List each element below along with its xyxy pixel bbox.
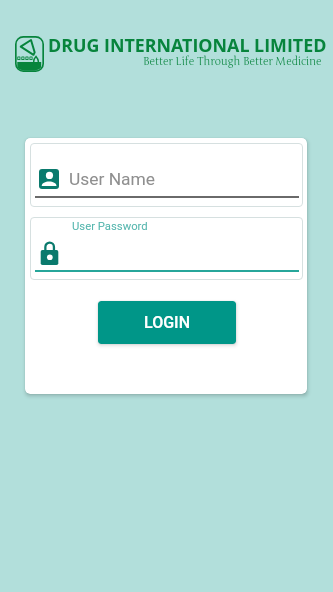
staticText: User Password [72,220,148,233]
button[interactable]: User Name [30,143,303,207]
other: Drug International logo [15,36,44,72]
staticText: LOGIN [144,313,190,332]
other: Password [40,241,58,265]
button[interactable]: User Password [30,217,303,280]
staticText: User Name [69,169,156,189]
staticText: DRUG INTERNATIONAL LIMITED [48,33,327,57]
button[interactable]: LOGIN [98,301,236,344]
staticText: Better Life Through Better Medicine [143,55,322,68]
